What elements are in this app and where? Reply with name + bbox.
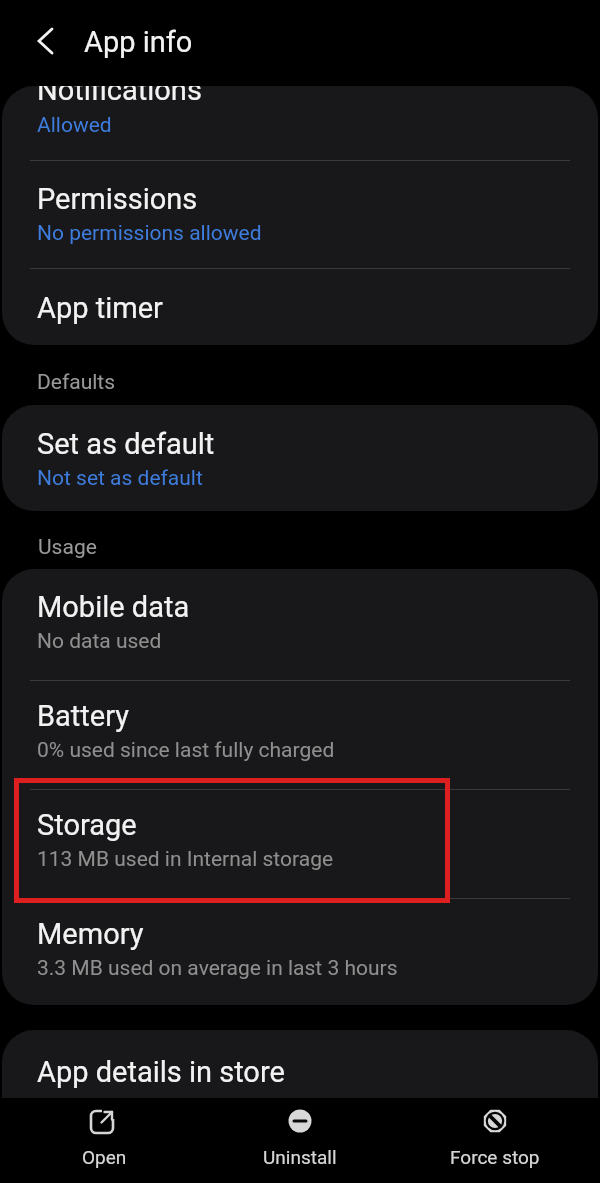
staticText: 3.3 MB used on average in last 3 hours: [37, 956, 398, 981]
staticText: Battery: [37, 699, 129, 733]
button[interactable]: [2, 269, 598, 345]
button[interactable]: Open: [44, 1098, 164, 1183]
staticText: Permissions: [37, 182, 198, 216]
staticText: Mobile data: [37, 590, 190, 624]
staticText: Open: [82, 1146, 127, 1168]
staticText: App info: [84, 25, 193, 59]
staticText: Usage: [38, 535, 97, 560]
staticText: App timer: [37, 291, 163, 325]
button[interactable]: [2, 569, 598, 680]
button[interactable]: Uninstall: [230, 1098, 370, 1183]
button[interactable]: App details in store: [2, 1030, 598, 1098]
staticText: Not set as default: [37, 466, 203, 491]
staticText: Set as default: [37, 427, 215, 461]
button[interactable]: [2, 790, 598, 898]
button[interactable]: [2, 161, 598, 268]
staticText: Storage: [37, 808, 137, 842]
staticText: Defaults: [37, 370, 116, 395]
staticText: Allowed: [37, 113, 112, 138]
button[interactable]: [2, 86, 598, 160]
staticText: Memory: [37, 917, 144, 951]
staticText: 113 MB used in Internal storage: [37, 847, 334, 872]
staticText: No permissions allowed: [37, 221, 262, 246]
button[interactable]: [2, 681, 598, 789]
button[interactable]: [2, 899, 598, 1005]
staticText: Uninstall: [263, 1146, 337, 1168]
button[interactable]: [26, 22, 64, 60]
staticText: 0% used since last fully charged: [37, 738, 335, 763]
button[interactable]: Force stop: [425, 1098, 565, 1183]
staticText: No data used: [37, 629, 162, 654]
staticText: App details in store: [37, 1055, 285, 1089]
button[interactable]: Set as default: [2, 405, 598, 511]
staticText: Notifications: [37, 86, 202, 107]
staticText: Force stop: [450, 1146, 540, 1168]
